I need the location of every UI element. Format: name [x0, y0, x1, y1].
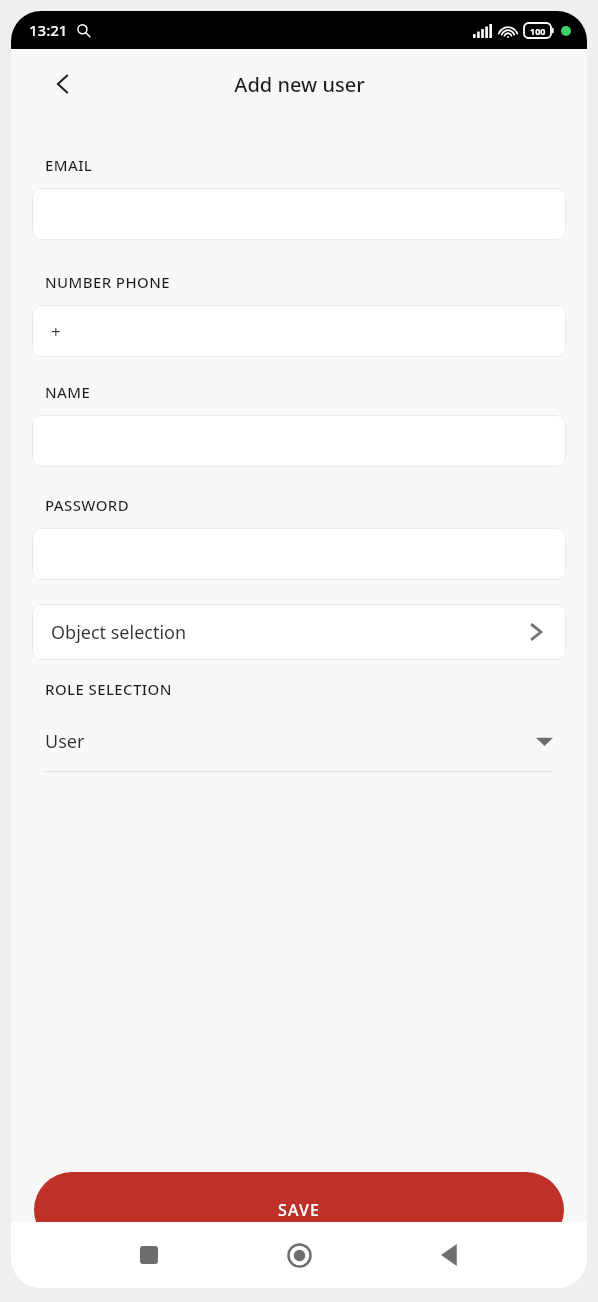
button[interactable]: [32, 415, 566, 467]
button[interactable]: Recent apps: [74, 1222, 224, 1288]
staticText: NUMBER PHONE: [45, 272, 170, 292]
staticText: PASSWORD: [45, 495, 130, 515]
staticText: User: [45, 729, 85, 754]
button[interactable]: Object selection: [32, 604, 566, 660]
button[interactable]: Back: [41, 62, 85, 106]
button[interactable]: [32, 188, 566, 240]
staticText: Add new user: [234, 71, 365, 98]
button[interactable]: +: [32, 305, 566, 357]
button[interactable]: User: [32, 723, 566, 772]
staticText: 100: [530, 25, 546, 37]
staticText: 13:21: [29, 20, 68, 40]
button[interactable]: [32, 528, 566, 580]
button[interactable]: Home: [224, 1222, 374, 1288]
staticText: ROLE SELECTION: [45, 679, 172, 699]
staticText: Object selection: [51, 620, 187, 645]
staticText: +: [51, 320, 61, 343]
button[interactable]: Back: [374, 1222, 524, 1288]
staticText: SAVE: [278, 1199, 321, 1221]
staticText: EMAIL: [45, 155, 93, 175]
staticText: NAME: [45, 382, 91, 402]
button[interactable]: SAVE: [34, 1172, 564, 1248]
